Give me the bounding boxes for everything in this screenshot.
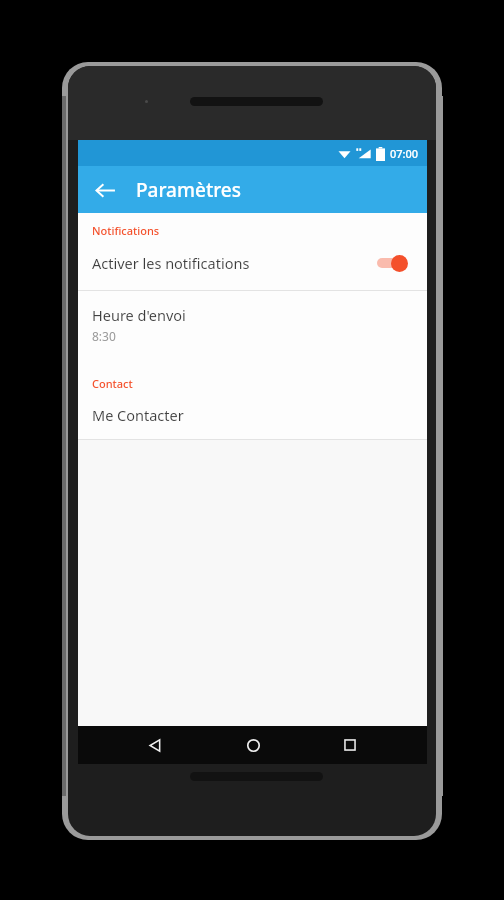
- staticText: Me Contacter: [92, 405, 184, 425]
- staticText: Paramètres: [136, 177, 241, 203]
- button[interactable]: Home: [233, 726, 273, 764]
- button[interactable]: Activer les notifications: [375, 252, 411, 274]
- staticText: 07:00: [390, 146, 419, 161]
- button[interactable]: Back: [135, 726, 175, 764]
- staticText: Contact: [92, 376, 133, 391]
- button[interactable]: Recent apps: [330, 726, 370, 764]
- button[interactable]: Activer les notifications: [78, 242, 427, 284]
- staticText: Notifications: [92, 223, 160, 238]
- staticText: Heure d'envoi: [92, 305, 186, 325]
- button[interactable]: Me Contacter: [78, 395, 427, 435]
- button[interactable]: Back: [84, 169, 126, 211]
- button[interactable]: Heure d'envoi: [78, 291, 427, 356]
- staticText: 8:30: [92, 328, 116, 344]
- staticText: Activer les notifications: [92, 253, 375, 273]
